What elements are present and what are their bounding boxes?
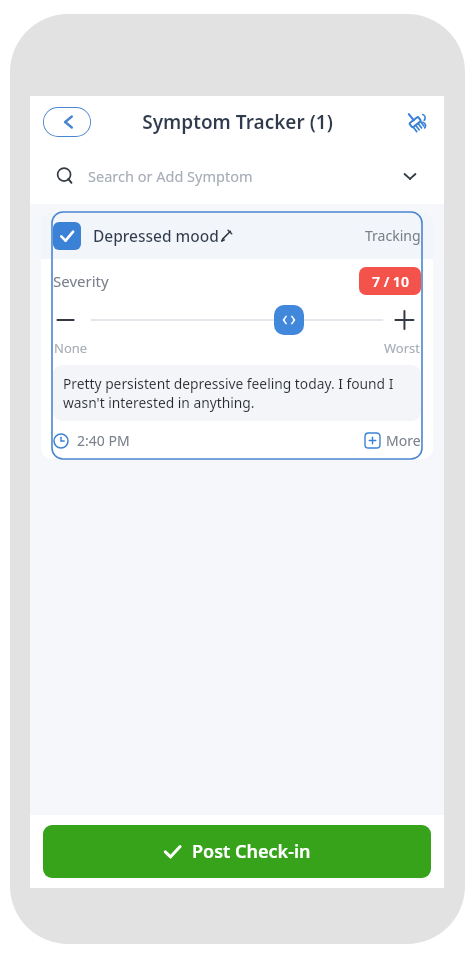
staticText: Post Check-in [192, 839, 311, 864]
button[interactable]: Depressed mood [41, 212, 433, 259]
button[interactable]: Clear all [398, 105, 432, 139]
button[interactable]: Search or Add Symptom [42, 152, 432, 200]
button[interactable]: More [365, 431, 421, 450]
button[interactable]: Post Check-in [43, 825, 431, 878]
staticText: Symptom Tracker (1) [142, 109, 333, 135]
button[interactable]: Back [43, 107, 91, 137]
staticText: Tracking [365, 226, 421, 245]
staticText: Pretty persistent depressive feeling tod… [63, 374, 394, 412]
staticText: Worst [384, 339, 420, 357]
staticText: Severity [53, 271, 109, 291]
staticText: 7 / 10 [372, 272, 409, 291]
staticText: None [54, 339, 88, 357]
button[interactable]: Pretty persistent depressive feeling tod… [53, 365, 421, 421]
button[interactable]: 7 / 10 [359, 267, 421, 295]
staticText: Depressed mood [93, 225, 219, 246]
button[interactable]: 2:40 PM [53, 431, 130, 450]
staticText: More [386, 431, 421, 450]
button[interactable]: Severity slider [274, 305, 304, 335]
staticText: Search or Add Symptom [88, 166, 253, 186]
staticText: 2:40 PM [77, 431, 130, 450]
